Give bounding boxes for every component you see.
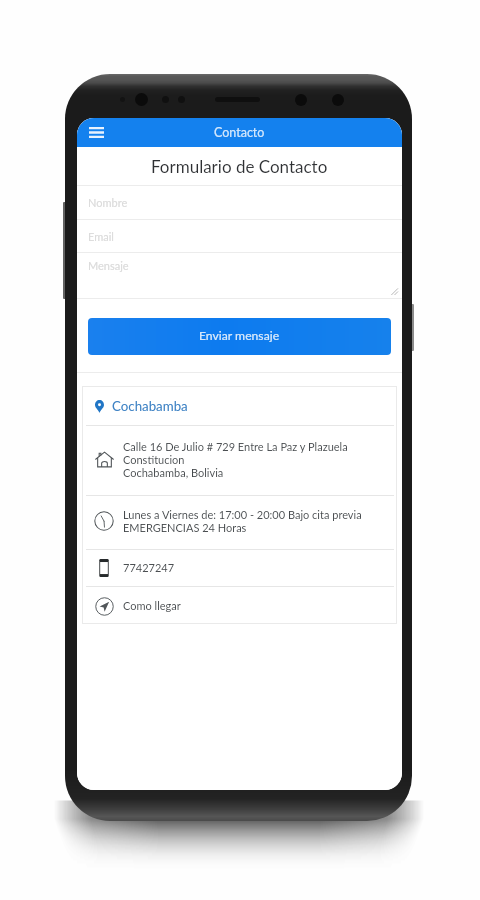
button[interactable]: Como llegar [93, 587, 389, 624]
staticText: Email [88, 230, 114, 243]
staticText: Enviar mensaje [199, 328, 280, 343]
button[interactable]: Nombre [77, 186, 402, 219]
button[interactable]: Enviar mensaje [88, 318, 391, 355]
staticText: Calle 16 De Julio # 729 Entre La Paz y P… [123, 440, 348, 453]
staticText: Nombre [88, 196, 128, 209]
staticText: Cochabamba, Bolivia [123, 466, 224, 479]
staticText: Mensaje [88, 259, 129, 272]
button[interactable]: Cochabamba [95, 386, 397, 425]
staticText: 77427247 [123, 561, 175, 574]
staticText: Lunes a Viernes de: 17:00 - 20:00 Bajo c… [123, 508, 362, 521]
staticText: Constitucion [123, 453, 185, 466]
button[interactable]: Lunes a Viernes de: 17:00 - 20:00 Bajo c… [93, 496, 389, 549]
staticText: Como llegar [123, 599, 181, 612]
button[interactable]: Open navigation menu [84, 121, 108, 145]
staticText: Formulario de Contacto [151, 156, 328, 176]
staticText: EMERGENCIAS 24 Horas [123, 521, 247, 534]
button[interactable]: 77427247 [93, 550, 389, 586]
button[interactable]: Calle 16 De Julio # 729 Entre La Paz y P… [93, 426, 389, 495]
staticText: Cochabamba [112, 398, 188, 414]
staticText: Contacto [214, 125, 265, 140]
